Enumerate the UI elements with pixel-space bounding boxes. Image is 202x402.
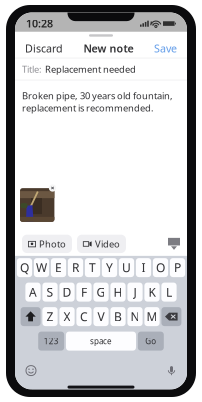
- button[interactable]: V: [93, 307, 109, 326]
- button[interactable]: Hide keyboard: [168, 238, 180, 250]
- staticText: S: [46, 284, 53, 300]
- button[interactable]: G: [93, 283, 109, 302]
- staticText: X: [63, 309, 70, 324]
- button[interactable]: Shift: [21, 307, 41, 326]
- staticText: T: [89, 260, 96, 275]
- staticText: V: [97, 309, 104, 324]
- staticText: 10:28: [26, 16, 53, 31]
- button[interactable]: Go: [138, 332, 164, 351]
- staticText: Title:: [22, 63, 42, 75]
- staticText: Photo: [39, 238, 66, 250]
- staticText: F: [81, 284, 87, 300]
- button[interactable]: B: [110, 307, 126, 326]
- staticText: Save: [154, 41, 177, 55]
- button[interactable]: Q: [17, 258, 32, 277]
- staticText: U: [122, 260, 131, 275]
- button[interactable]: S: [42, 283, 58, 302]
- button[interactable]: Emoji keyboard: [26, 366, 36, 376]
- staticText: I: [141, 260, 145, 275]
- staticText: J: [133, 284, 136, 300]
- button[interactable]: L: [161, 283, 177, 302]
- button[interactable]: W: [34, 258, 49, 277]
- button[interactable]: Photo: [22, 235, 72, 253]
- staticText: Z: [46, 309, 53, 324]
- button[interactable]: X: [59, 307, 75, 326]
- staticText: Go: [145, 336, 156, 346]
- button[interactable]: A: [25, 283, 41, 302]
- button[interactable]: Z: [42, 307, 58, 326]
- button[interactable]: D: [59, 283, 75, 302]
- staticText: Discard: [25, 41, 63, 55]
- button[interactable]: Dictate: [167, 365, 176, 376]
- staticText: space: [90, 336, 112, 346]
- button[interactable]: H: [110, 283, 126, 302]
- staticText: E: [55, 260, 62, 275]
- staticText: G: [96, 284, 105, 300]
- button[interactable]: J: [127, 283, 143, 302]
- button[interactable]: Discard: [23, 38, 65, 58]
- staticText: Video: [95, 238, 120, 250]
- button[interactable]: N: [127, 307, 143, 326]
- button[interactable]: space: [66, 332, 136, 351]
- staticText: O: [156, 260, 165, 275]
- button[interactable]: M: [144, 307, 160, 326]
- staticText: A: [29, 284, 37, 300]
- staticText: L: [166, 284, 172, 300]
- button[interactable]: 123: [38, 332, 64, 351]
- button[interactable]: P: [170, 258, 185, 277]
- staticText: New note: [83, 41, 133, 55]
- button[interactable]: O: [153, 258, 168, 277]
- button[interactable]: Video: [77, 235, 126, 253]
- staticText: Y: [106, 260, 113, 275]
- staticText: P: [174, 260, 181, 275]
- staticText: M: [146, 309, 157, 324]
- button[interactable]: E: [51, 258, 66, 277]
- staticText: B: [114, 309, 122, 324]
- staticText: Q: [20, 260, 29, 275]
- staticText: Broken pipe, 30 years old fountain, repl…: [22, 89, 173, 114]
- button[interactable]: Save: [152, 38, 179, 58]
- button[interactable]: I: [136, 258, 151, 277]
- staticText: D: [62, 284, 71, 300]
- button[interactable]: C: [76, 307, 92, 326]
- button[interactable]: T: [85, 258, 100, 277]
- staticText: 123: [44, 336, 59, 346]
- staticText: Replacement needed: [45, 63, 136, 75]
- staticText: H: [113, 284, 122, 300]
- button[interactable]: F: [76, 283, 92, 302]
- staticText: R: [72, 260, 79, 275]
- button[interactable]: U: [119, 258, 134, 277]
- button[interactable]: K: [144, 283, 160, 302]
- staticText: N: [130, 309, 139, 324]
- button[interactable]: R: [68, 258, 83, 277]
- button[interactable]: Delete: [161, 307, 181, 326]
- staticText: K: [148, 284, 155, 300]
- button[interactable]: Y: [102, 258, 117, 277]
- staticText: W: [36, 260, 47, 275]
- staticText: C: [80, 309, 88, 324]
